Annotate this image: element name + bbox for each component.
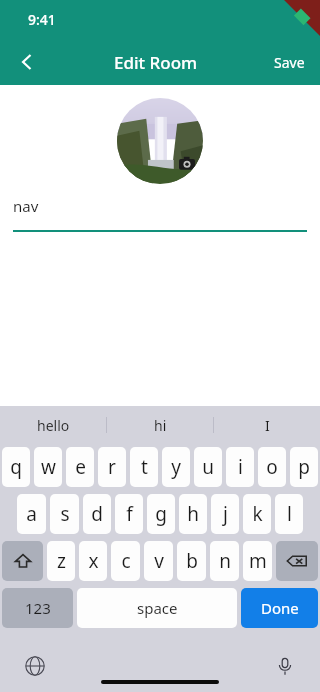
button[interactable]: m — [243, 541, 272, 581]
staticText: s — [60, 501, 70, 527]
button[interactable]: Change room photo — [117, 98, 203, 184]
button[interactable]: v — [144, 541, 173, 581]
staticText: f — [126, 501, 133, 527]
staticText: Save — [274, 53, 305, 72]
button[interactable]: Change keyboard language — [20, 651, 50, 681]
staticText: k — [252, 501, 263, 527]
staticText: j — [223, 501, 228, 527]
button[interactable]: h — [179, 494, 207, 534]
staticText: b — [186, 548, 198, 574]
button[interactable]: t — [130, 447, 158, 487]
button[interactable]: I — [214, 406, 320, 444]
button[interactable]: j — [211, 494, 239, 534]
button[interactable]: p — [290, 447, 318, 487]
staticText: x — [88, 548, 99, 574]
staticText: 9:41 — [28, 10, 56, 29]
button[interactable]: x — [79, 541, 107, 581]
staticText: 123 — [25, 598, 51, 618]
staticText: hi — [154, 416, 167, 435]
staticText: y — [171, 454, 181, 480]
staticText: e — [75, 454, 86, 480]
staticText: z — [57, 548, 66, 574]
button[interactable]: r — [98, 447, 126, 487]
staticText: p — [298, 454, 310, 480]
button[interactable]: Back — [0, 39, 54, 85]
button[interactable]: k — [243, 494, 271, 534]
staticText: t — [141, 454, 148, 480]
staticText: I — [265, 416, 270, 435]
staticText: hello — [37, 416, 70, 435]
staticText: v — [154, 548, 164, 574]
staticText: q — [10, 454, 22, 480]
button[interactable]: Backspace — [276, 541, 318, 581]
button[interactable]: f — [115, 494, 143, 534]
button[interactable]: u — [194, 447, 222, 487]
staticText: n — [219, 548, 231, 574]
staticText: u — [202, 454, 214, 480]
button[interactable]: i — [226, 447, 254, 487]
staticText: w — [41, 454, 56, 480]
staticText: Edit Room — [114, 51, 198, 74]
button[interactable]: d — [83, 494, 111, 534]
button[interactable]: nav — [13, 196, 307, 232]
button[interactable]: e — [66, 447, 94, 487]
button[interactable]: Shift — [2, 541, 43, 581]
staticText: d — [91, 501, 103, 527]
staticText: c — [121, 548, 131, 574]
staticText: Done — [261, 598, 299, 618]
button[interactable]: y — [162, 447, 190, 487]
button[interactable]: space — [77, 588, 237, 628]
button[interactable]: hi — [107, 406, 213, 444]
staticText: r — [108, 454, 116, 480]
staticText: space — [137, 598, 178, 618]
button[interactable]: w — [34, 447, 62, 487]
button[interactable]: a — [17, 494, 46, 534]
button[interactable]: hello — [0, 406, 106, 444]
button[interactable]: Done — [241, 588, 318, 628]
button[interactable]: l — [275, 494, 303, 534]
staticText: m — [249, 548, 267, 574]
staticText: a — [26, 501, 37, 527]
button[interactable]: b — [177, 541, 206, 581]
button[interactable]: n — [210, 541, 239, 581]
button[interactable]: Voice input — [270, 651, 300, 681]
staticText: i — [238, 454, 243, 480]
staticText: nav — [13, 196, 39, 216]
button[interactable]: c — [111, 541, 140, 581]
button[interactable]: z — [47, 541, 75, 581]
button[interactable]: g — [147, 494, 175, 534]
staticText: g — [155, 501, 167, 527]
button[interactable]: 123 — [2, 588, 73, 628]
button[interactable]: Save — [258, 39, 320, 85]
staticText: h — [187, 501, 199, 527]
staticText: l — [287, 501, 292, 527]
button[interactable]: q — [2, 447, 30, 487]
button[interactable]: o — [258, 447, 286, 487]
staticText: o — [266, 454, 278, 480]
button[interactable]: s — [50, 494, 79, 534]
